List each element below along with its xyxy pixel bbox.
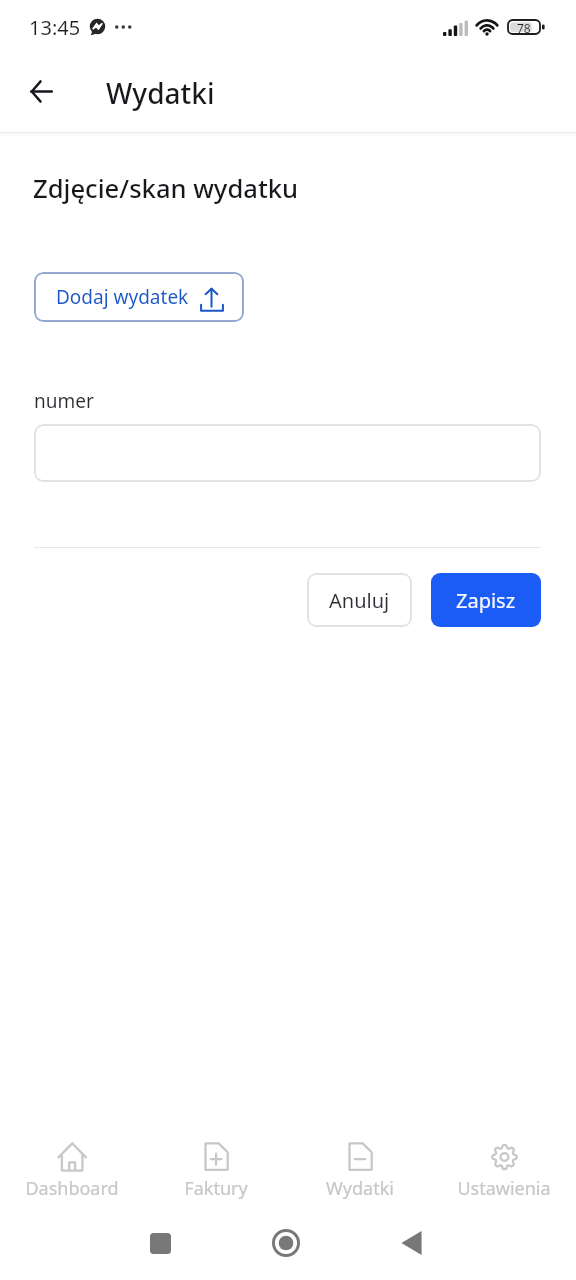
button[interactable]: Recent apps bbox=[136, 1219, 184, 1267]
staticText: Faktury bbox=[184, 1176, 248, 1201]
staticText: Wydatki bbox=[326, 1176, 394, 1201]
staticText: 13:45 bbox=[29, 14, 81, 41]
staticText: Anuluj bbox=[329, 587, 390, 614]
staticText: 78 bbox=[517, 20, 531, 34]
button[interactable]: Ustawienia bbox=[432, 1133, 576, 1203]
button[interactable]: Faktury bbox=[144, 1133, 288, 1203]
staticText: Zapisz bbox=[456, 587, 516, 614]
button[interactable]: Dodaj wydatek bbox=[34, 272, 244, 322]
button[interactable]: Back bbox=[387, 1219, 435, 1267]
button[interactable]: Back bbox=[17, 67, 65, 115]
staticText: Wydatki bbox=[106, 74, 215, 112]
button[interactable]: Wydatki bbox=[288, 1133, 432, 1203]
button[interactable]: numer bbox=[34, 424, 541, 482]
button[interactable]: Zapisz bbox=[431, 573, 541, 627]
button[interactable]: Dashboard bbox=[0, 1133, 144, 1203]
staticText: Zdjęcie/skan wydatku bbox=[33, 171, 299, 206]
button[interactable]: Anuluj bbox=[307, 573, 412, 627]
staticText: numer bbox=[34, 388, 94, 414]
staticText: Ustawienia bbox=[457, 1176, 551, 1201]
button[interactable]: Home bbox=[262, 1219, 310, 1267]
staticText: Dodaj wydatek bbox=[56, 284, 189, 310]
staticText: Dashboard bbox=[25, 1176, 119, 1201]
